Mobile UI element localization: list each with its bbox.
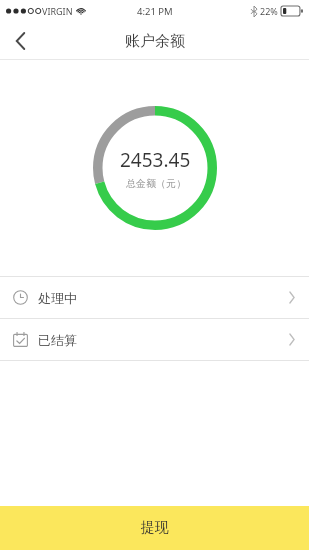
- staticText: 处理中: [38, 290, 77, 306]
- staticText: 账户余额: [125, 32, 185, 51]
- staticText: 2453.45: [120, 147, 191, 173]
- button[interactable]: Back: [0, 22, 40, 60]
- staticText: 22%: [260, 5, 278, 17]
- staticText: 总金额（元）: [126, 177, 186, 190]
- staticText: 提现: [141, 519, 169, 537]
- staticText: VIRGIN: [42, 5, 73, 17]
- button[interactable]: 处理中: [0, 277, 309, 318]
- staticText: 4:21 PM: [137, 5, 173, 18]
- button[interactable]: 提现: [0, 506, 309, 550]
- staticText: 已结算: [38, 332, 77, 348]
- button[interactable]: 已结算: [0, 319, 309, 360]
